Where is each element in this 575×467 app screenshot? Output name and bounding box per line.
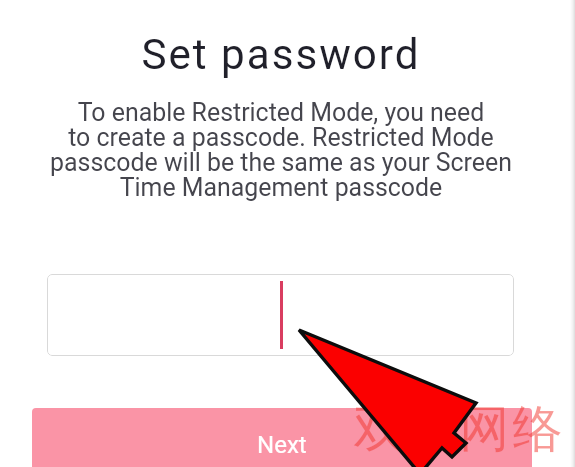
staticText: Next — [257, 431, 307, 459]
staticText: To enable Restricted Mode, you need to c… — [50, 98, 512, 202]
button[interactable]: Next — [32, 408, 532, 467]
button[interactable]: Passcode input field — [47, 274, 514, 356]
staticText: 双击网络 — [352, 398, 564, 461]
staticText: Set password — [141, 30, 421, 79]
